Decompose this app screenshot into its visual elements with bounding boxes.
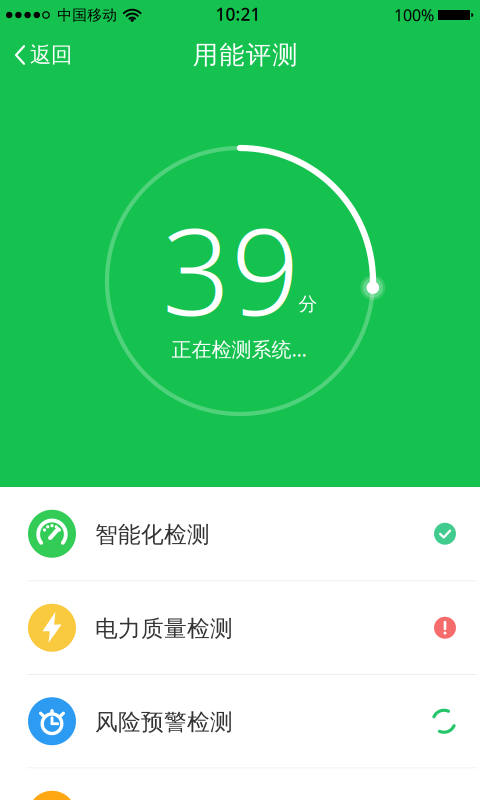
staticText: 10:21	[215, 2, 260, 25]
staticText: 返回	[30, 42, 72, 68]
button[interactable]: 电力质量检测	[0, 581, 480, 674]
button[interactable]: 用电安全检测	[0, 768, 480, 800]
staticText: 中国移动	[57, 6, 117, 24]
staticText: 用能评测	[193, 39, 297, 70]
staticText: 正在检测系统...	[171, 336, 306, 362]
staticText: 分	[298, 292, 317, 315]
button[interactable]: 智能化检测	[0, 487, 480, 580]
staticText: 风险预警检测	[95, 708, 233, 736]
staticText: 100%	[394, 4, 434, 26]
button[interactable]: 风险预警检测	[0, 675, 480, 767]
button[interactable]: 返回	[0, 31, 72, 75]
staticText: 39	[162, 189, 300, 349]
staticText: 智能化检测	[95, 521, 210, 549]
staticText: 电力质量检测	[95, 615, 233, 643]
